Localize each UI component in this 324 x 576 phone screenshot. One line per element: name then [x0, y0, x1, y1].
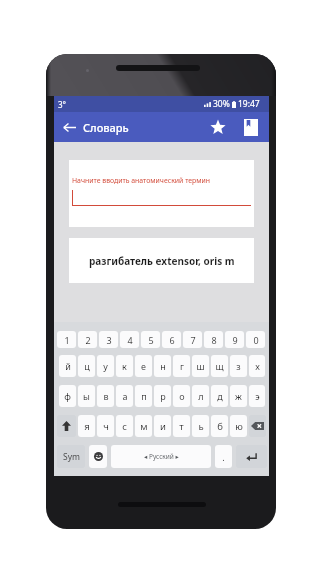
staticText: ч — [103, 420, 109, 433]
staticText: м — [140, 420, 148, 433]
button[interactable]: Emoji — [89, 445, 107, 468]
button[interactable]: п — [135, 385, 152, 407]
staticText: 1 — [64, 334, 70, 346]
button[interactable]: . — [215, 445, 232, 468]
button[interactable]: ж — [230, 385, 247, 407]
button[interactable]: 2 — [78, 331, 97, 348]
button[interactable]: Начните вводить анатомический термин — [69, 160, 254, 227]
staticText: я — [84, 420, 90, 433]
staticText: ю — [235, 420, 243, 433]
staticText: 30% — [213, 98, 230, 110]
staticText: 3° — [58, 99, 66, 110]
staticText: в — [103, 390, 109, 402]
staticText: 2 — [85, 334, 91, 346]
button[interactable]: о — [173, 385, 190, 407]
button[interactable]: к — [116, 355, 133, 377]
staticText: т — [179, 420, 184, 433]
button[interactable]: ь — [192, 415, 209, 437]
button[interactable]: у — [97, 355, 114, 377]
staticText: л — [198, 390, 204, 402]
button[interactable]: разгибатель extensor, oris m — [69, 238, 254, 283]
button[interactable]: Sym — [57, 445, 85, 468]
button[interactable]: Favorites — [203, 112, 233, 142]
button[interactable]: 8 — [204, 331, 223, 348]
staticText: 7 — [190, 334, 196, 346]
staticText: й — [65, 360, 71, 372]
staticText: п — [141, 390, 147, 402]
staticText: 5 — [148, 334, 154, 346]
button[interactable]: д — [211, 385, 228, 407]
button[interactable]: л — [192, 385, 209, 407]
button[interactable]: Bookmarks — [238, 112, 264, 142]
staticText: 19:47 — [238, 98, 260, 110]
staticText: х — [255, 360, 260, 372]
staticText: о — [179, 390, 185, 402]
staticText: . — [222, 451, 225, 463]
staticText: 4 — [127, 334, 133, 346]
button[interactable]: б — [211, 415, 228, 437]
staticText: ш — [196, 360, 205, 372]
button[interactable]: Enter — [236, 445, 267, 468]
button[interactable]: ю — [230, 415, 247, 437]
button[interactable]: ч — [97, 415, 114, 437]
staticText: г — [180, 360, 184, 372]
button[interactable]: Shift — [57, 415, 76, 437]
staticText: ф — [64, 390, 71, 402]
button[interactable]: ф — [59, 385, 76, 407]
button[interactable]: ◂ Русский ▸ — [111, 445, 211, 468]
button[interactable]: э — [249, 385, 265, 407]
button[interactable]: т — [173, 415, 190, 437]
button[interactable]: 4 — [120, 331, 139, 348]
button[interactable]: й — [59, 355, 76, 377]
button[interactable]: з — [230, 355, 247, 377]
button[interactable]: ц — [78, 355, 95, 377]
staticText: н — [160, 360, 166, 372]
button[interactable]: Back — [59, 117, 80, 138]
button[interactable]: р — [154, 385, 171, 407]
staticText: и — [160, 420, 166, 433]
staticText: э — [255, 390, 260, 402]
staticText: ы — [83, 390, 90, 402]
button[interactable]: щ — [211, 355, 228, 377]
button[interactable]: а — [116, 385, 133, 407]
staticText: Начните вводить анатомический термин — [72, 176, 211, 185]
staticText: д — [217, 390, 223, 402]
button[interactable]: н — [154, 355, 171, 377]
staticText: ◂ Русский ▸ — [144, 452, 179, 461]
button[interactable]: 6 — [162, 331, 181, 348]
staticText: б — [217, 420, 223, 433]
staticText: щ — [215, 360, 224, 372]
button[interactable]: г — [173, 355, 190, 377]
staticText: с — [122, 420, 127, 433]
button[interactable]: 3 — [99, 331, 118, 348]
button[interactable]: м — [135, 415, 152, 437]
button[interactable]: ы — [78, 385, 95, 407]
staticText: 3 — [106, 334, 112, 346]
button[interactable]: ш — [192, 355, 209, 377]
staticText: 8 — [211, 334, 217, 346]
button[interactable]: 9 — [225, 331, 244, 348]
button[interactable]: я — [78, 415, 95, 437]
staticText: з — [236, 360, 241, 372]
button[interactable]: Backspace — [249, 415, 266, 437]
staticText: а — [122, 390, 128, 402]
button[interactable]: в — [97, 385, 114, 407]
button[interactable]: 0 — [246, 331, 265, 348]
button[interactable]: 7 — [183, 331, 202, 348]
staticText: ц — [84, 360, 90, 372]
staticText: разгибатель extensor, oris m — [89, 254, 235, 268]
button[interactable]: с — [116, 415, 133, 437]
button[interactable]: х — [249, 355, 265, 377]
staticText: у — [103, 360, 108, 372]
staticText: ь — [198, 420, 204, 433]
staticText: 9 — [232, 334, 238, 346]
button[interactable]: и — [154, 415, 171, 437]
button[interactable]: 5 — [141, 331, 160, 348]
button[interactable]: е — [135, 355, 152, 377]
staticText: е — [141, 360, 146, 372]
staticText: 0 — [253, 334, 259, 346]
staticText: Sym — [63, 451, 80, 463]
staticText: р — [160, 390, 166, 402]
button[interactable]: 1 — [57, 331, 76, 348]
staticText: к — [122, 360, 127, 372]
